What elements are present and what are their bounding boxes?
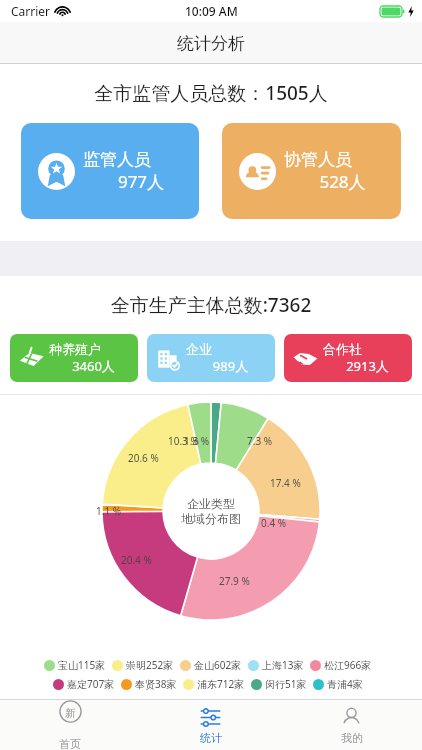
staticText: 统计分析 [177, 33, 245, 54]
staticText: 977人 [83, 170, 199, 193]
other: 合作社 [292, 345, 319, 372]
staticText: 种养殖户 [49, 341, 101, 357]
staticText: 17.4 % [270, 476, 301, 490]
staticText: 金山602家 [194, 658, 242, 672]
staticText: 2913人 [323, 357, 412, 375]
staticText: 0.4 % [261, 516, 287, 530]
staticText: 新 [65, 706, 76, 720]
staticText: 地域分布图 [181, 511, 241, 526]
staticText: 崇明252家 [126, 658, 174, 672]
staticText: 合作社 [323, 341, 362, 357]
button[interactable]: 新 [0, 700, 140, 750]
staticText: 1.3 % [184, 434, 210, 448]
staticText: 20.4 % [121, 553, 152, 567]
staticText: 10:09 AM [185, 3, 238, 19]
staticText: 奉贤38家 [135, 677, 177, 691]
other: 监管人员 [38, 153, 75, 190]
staticText: 528人 [284, 170, 401, 193]
other: 协管人员 [239, 153, 276, 190]
staticText: 企业 [186, 341, 212, 357]
staticText: 1.1 % [96, 504, 122, 518]
staticText: 7.3 % [247, 434, 273, 448]
staticText: 3460人 [49, 357, 138, 375]
staticText: 嘉定707家 [67, 677, 115, 691]
staticText: 青浦4家 [327, 677, 363, 691]
button[interactable]: 协管人员 [222, 123, 401, 219]
button[interactable]: 企业 [147, 334, 275, 382]
button[interactable]: 种养殖户 [10, 334, 138, 382]
staticText: 宝山115家 [58, 658, 106, 672]
staticText: 浦东712家 [197, 677, 245, 691]
button[interactable]: 统计 [140, 700, 281, 750]
button[interactable]: 我的 [281, 700, 422, 750]
staticText: 全市生产主体总数:7362 [0, 292, 422, 318]
staticText: 首页 [59, 737, 81, 750]
other: 种养殖户 [18, 345, 45, 372]
staticText: 10.3 % [168, 434, 199, 448]
staticText: 松江966家 [324, 658, 372, 672]
staticText: 企业类型 [187, 496, 235, 511]
staticText: 20.6 % [128, 451, 159, 465]
staticText: 闵行51家 [265, 677, 307, 691]
staticText: 我的 [341, 731, 363, 745]
other: 企业 [155, 345, 182, 372]
staticText: 协管人员 [284, 149, 352, 170]
staticText: 27.9 % [219, 574, 250, 588]
staticText: Carrier [11, 3, 51, 19]
staticText: 上海13家 [262, 658, 304, 672]
button[interactable]: 监管人员 [21, 123, 199, 219]
staticText: 全市监管人员总数：1505人 [0, 80, 422, 106]
button[interactable]: 合作社 [284, 334, 412, 382]
staticText: 统计 [200, 731, 222, 745]
staticText: 989人 [186, 357, 275, 375]
staticText: 监管人员 [83, 149, 151, 170]
